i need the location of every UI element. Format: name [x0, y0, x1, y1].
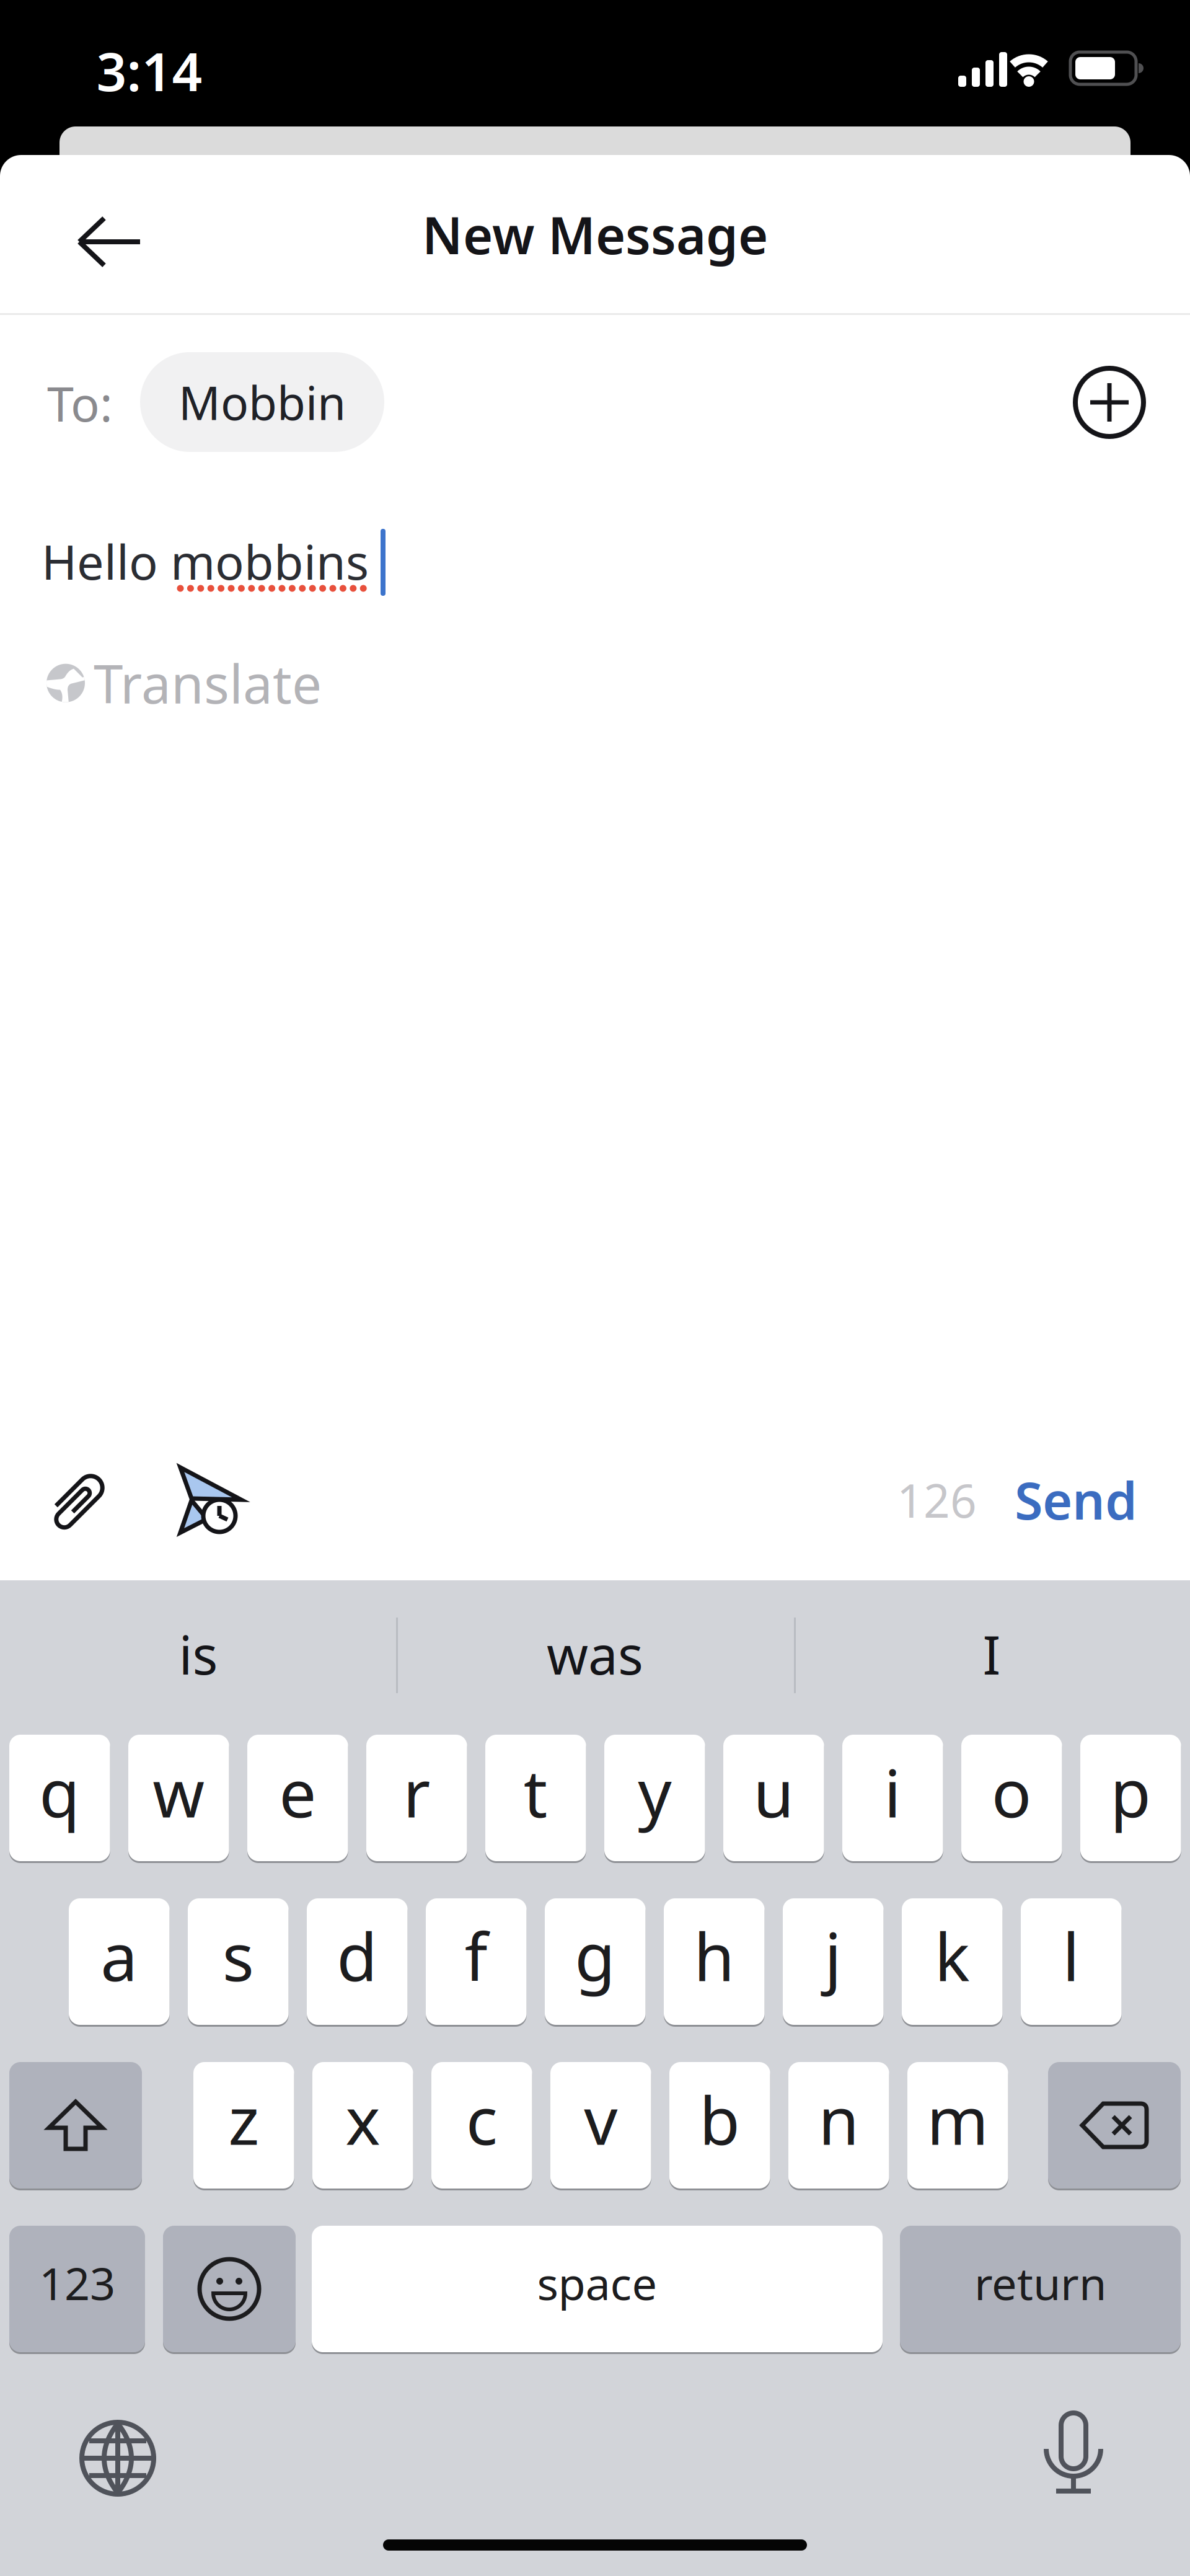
staticText: was [547, 1619, 643, 1689]
staticText: Translate [94, 648, 322, 718]
button[interactable]: was [409, 1617, 781, 1691]
button[interactable]: z [193, 2061, 294, 2190]
staticText: b [699, 2075, 740, 2163]
button[interactable]: k [902, 1897, 1003, 2026]
button[interactable]: l [1021, 1897, 1122, 2026]
staticText: t [524, 1748, 548, 1836]
button[interactable]: a [69, 1897, 170, 2026]
button[interactable]: Translate [46, 648, 322, 718]
button[interactable]: r [366, 1733, 467, 1862]
staticText: s [222, 1912, 254, 1999]
staticText: Mobbin [178, 371, 346, 433]
staticText: y [638, 1748, 671, 1836]
staticText: To: [47, 371, 113, 435]
button[interactable]: Mobbin [140, 352, 384, 452]
staticText: c [466, 2075, 498, 2163]
button[interactable]: Schedule send [175, 1464, 247, 1536]
button[interactable]: Send [1002, 1469, 1150, 1531]
staticText: e [279, 1748, 316, 1836]
button[interactable]: I [806, 1617, 1178, 1691]
button[interactable]: c [431, 2061, 532, 2190]
button[interactable]: Shift [9, 2061, 142, 2190]
staticText: 126 [897, 1469, 977, 1530]
staticText: p [1110, 1748, 1151, 1836]
staticText: a [101, 1912, 138, 1999]
staticText: h [694, 1912, 735, 1999]
button[interactable]: o [961, 1733, 1062, 1862]
staticText: 3:14 [96, 36, 202, 106]
button[interactable]: h [664, 1897, 765, 2026]
staticText: m [927, 2075, 989, 2163]
button[interactable]: p [1080, 1733, 1181, 1862]
staticText: I [983, 1619, 1001, 1689]
staticText: Hello mobbins [42, 529, 369, 593]
button[interactable]: j [783, 1897, 884, 2026]
button[interactable]: s [188, 1897, 289, 2026]
button[interactable]: t [485, 1733, 586, 1862]
button[interactable]: Emoji [163, 2224, 296, 2353]
staticText: r [403, 1748, 430, 1836]
staticText: o [992, 1748, 1032, 1836]
button[interactable]: b [669, 2061, 770, 2190]
staticText: space [537, 2253, 657, 2312]
button[interactable]: y [604, 1733, 705, 1862]
staticText: 123 [39, 2253, 115, 2312]
button[interactable]: return [900, 2224, 1181, 2353]
button[interactable]: q [9, 1733, 110, 1862]
button[interactable]: n [788, 2061, 889, 2190]
button[interactable]: Add recipient [1075, 368, 1144, 436]
staticText: Send [1015, 1466, 1137, 1534]
button[interactable]: e [247, 1733, 348, 1862]
button[interactable]: Next keyboard [82, 2422, 154, 2494]
staticText: w [153, 1748, 205, 1836]
staticText: is [179, 1619, 218, 1689]
staticText: j [825, 1912, 842, 1999]
button[interactable]: is [12, 1617, 384, 1691]
button[interactable]: Delete [1048, 2061, 1181, 2190]
button[interactable]: v [550, 2061, 651, 2190]
button[interactable]: Dictate [1033, 2413, 1114, 2497]
button[interactable]: u [723, 1733, 824, 1862]
staticText: return [974, 2253, 1106, 2312]
button[interactable]: Back [59, 198, 159, 285]
staticText: i [884, 1748, 901, 1836]
button[interactable]: i [842, 1733, 943, 1862]
button[interactable]: w [128, 1733, 229, 1862]
staticText: d [337, 1912, 378, 1999]
staticText: l [1063, 1912, 1080, 1999]
button[interactable]: g [545, 1897, 646, 2026]
staticText: x [345, 2075, 380, 2163]
staticText: f [465, 1912, 488, 1999]
staticText: k [935, 1912, 970, 1999]
button[interactable]: d [307, 1897, 408, 2026]
button[interactable]: m [907, 2061, 1008, 2190]
button[interactable]: Attach file [43, 1467, 112, 1535]
button[interactable]: space [312, 2224, 883, 2353]
staticText: n [818, 2075, 859, 2163]
button[interactable]: 123 [9, 2224, 145, 2353]
staticText: u [753, 1748, 794, 1836]
button[interactable]: f [426, 1897, 527, 2026]
staticText: z [228, 2075, 259, 2163]
staticText: v [584, 2075, 617, 2163]
button[interactable]: x [312, 2061, 413, 2190]
staticText: New Message [422, 200, 768, 268]
staticText: g [575, 1912, 616, 1999]
staticText: q [39, 1748, 80, 1836]
